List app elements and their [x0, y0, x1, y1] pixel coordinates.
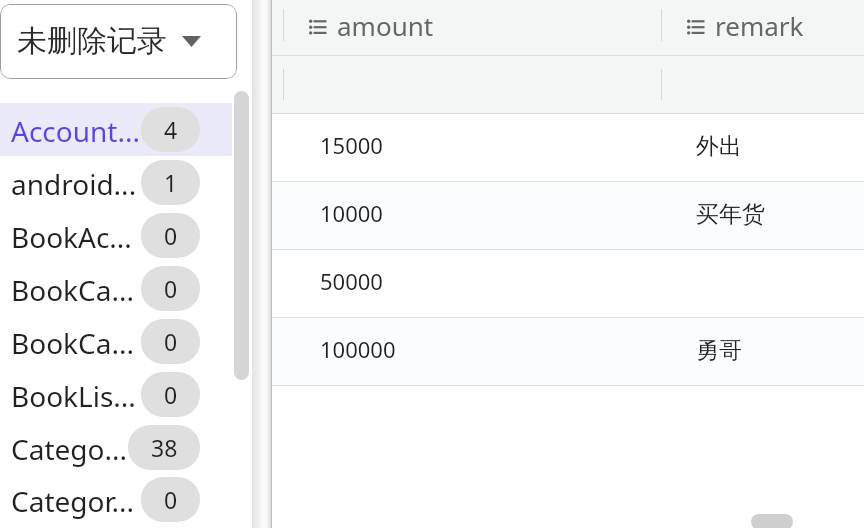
button[interactable]: 15000	[272, 114, 864, 181]
staticText: amount	[337, 8, 434, 43]
button[interactable]: Horizontal scrollbar	[751, 514, 793, 528]
staticText: 未删除记录	[17, 22, 167, 60]
button[interactable]: 100000	[272, 318, 864, 385]
button[interactable]: Vertical scrollbar	[234, 91, 249, 380]
staticText: remark	[715, 8, 804, 43]
button[interactable]: Categor...	[0, 473, 232, 526]
button[interactable]: BookCa...	[0, 315, 232, 368]
button[interactable]: BookLis...	[0, 368, 232, 421]
button[interactable]: BookCa...	[0, 262, 232, 315]
button[interactable]: Catego...	[0, 421, 232, 474]
button[interactable]: 50000	[272, 250, 864, 317]
staticText: 15000	[320, 130, 383, 160]
staticText: 0	[164, 220, 178, 251]
staticText: 外出	[696, 132, 742, 161]
staticText: Account...	[11, 112, 140, 150]
staticText: 0	[164, 484, 178, 515]
button[interactable]: android...	[0, 156, 232, 209]
staticText: 1	[164, 167, 178, 198]
staticText: android...	[11, 165, 137, 203]
button[interactable]: 未删除记录 filter, open dropdown	[0, 4, 237, 79]
button[interactable]: amount	[309, 0, 434, 55]
button[interactable]: BookAc...	[0, 209, 232, 262]
staticText: 勇哥	[696, 336, 742, 365]
button[interactable]: Account...	[0, 103, 232, 156]
staticText: 10000	[320, 198, 383, 228]
staticText: 买年货	[696, 200, 765, 229]
staticText: 38	[151, 432, 178, 463]
button[interactable]: remark	[687, 0, 804, 55]
staticText: BookLis...	[11, 377, 136, 415]
button[interactable]: 10000	[272, 182, 864, 249]
staticText: BookCa...	[11, 324, 134, 362]
staticText: BookCa...	[11, 271, 134, 309]
staticText: 0	[164, 273, 178, 304]
staticText: 0	[164, 379, 178, 410]
staticText: 50000	[320, 266, 383, 296]
staticText: 4	[164, 114, 178, 145]
staticText: 0	[164, 326, 178, 357]
staticText: Catego...	[11, 430, 127, 468]
staticText: BookAc...	[11, 218, 132, 256]
staticText: Categor...	[11, 482, 135, 520]
staticText: 100000	[320, 334, 396, 364]
